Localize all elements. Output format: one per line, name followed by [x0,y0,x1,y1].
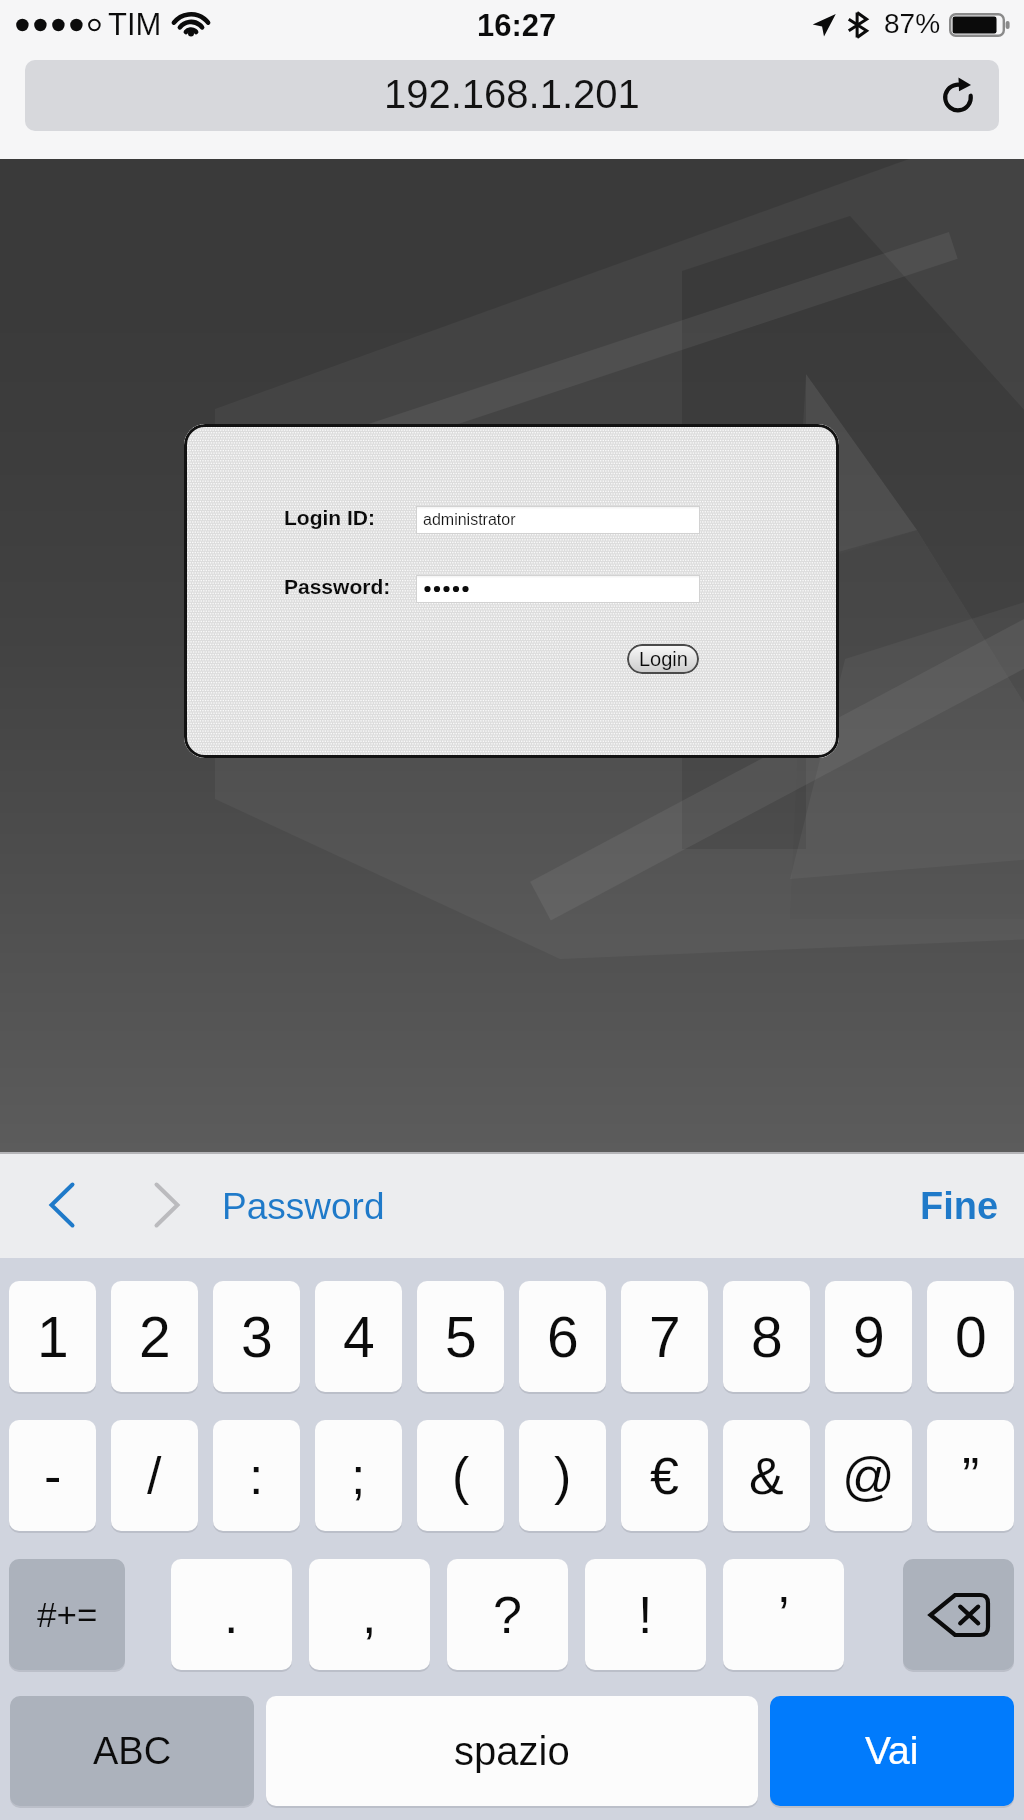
button[interactable]: 9 [825,1281,912,1392]
staticText: 192.168.1.201 [384,72,640,117]
staticText: @ [842,1447,895,1505]
button[interactable]: 7 [621,1281,708,1392]
staticText: ? [493,1586,522,1644]
staticText: . [224,1586,239,1644]
button[interactable]: Previous field [30,1164,94,1246]
staticText: ABC [93,1730,172,1772]
staticText: ” [962,1447,980,1505]
button[interactable]: 6 [519,1281,606,1392]
staticText: / [147,1447,162,1505]
staticText: #+= [37,1595,98,1634]
staticText: TIM [108,7,162,42]
staticText: 16:27 [477,8,557,43]
staticText: 7 [649,1305,681,1369]
button[interactable]: administrator [416,506,700,534]
staticText: € [650,1447,679,1505]
button[interactable]: ABC [10,1696,254,1806]
staticText: , [362,1586,377,1644]
staticText: spazio [454,1729,570,1774]
button[interactable]: 192.168.1.201 [25,60,999,131]
staticText: ’ [778,1586,790,1644]
button[interactable]: , [309,1559,430,1670]
button[interactable]: 8 [723,1281,810,1392]
staticText: ; [351,1447,366,1505]
staticText: 87% [884,8,941,39]
button[interactable]: ’ [723,1559,844,1670]
button[interactable]: Vai [770,1696,1014,1806]
staticText: 2 [139,1305,171,1369]
staticText: 8 [751,1305,783,1369]
button[interactable]: & [723,1420,810,1531]
button[interactable]: . [171,1559,292,1670]
button[interactable]: Fine [906,1172,1013,1238]
other: Backspace [903,1559,1014,1670]
staticText: & [749,1447,784,1505]
staticText: 6 [547,1305,579,1369]
staticText: Password: [284,575,391,598]
staticText: administrator [423,511,516,529]
button[interactable]: 3 [213,1281,300,1392]
button[interactable]: - [9,1420,96,1531]
button[interactable]: : [213,1420,300,1531]
button[interactable]: 4 [315,1281,402,1392]
button[interactable]: 2 [111,1281,198,1392]
staticText: 9 [853,1305,885,1369]
button[interactable]: #+= [9,1559,125,1670]
button[interactable]: ; [315,1420,402,1531]
staticText: Fine [920,1185,999,1227]
staticText: ( [452,1447,470,1505]
staticText: 3 [241,1305,273,1369]
staticText: 4 [343,1305,375,1369]
button[interactable]: 0 [927,1281,1014,1392]
button[interactable]: / [111,1420,198,1531]
button[interactable]: 1 [9,1281,96,1392]
button[interactable]: Login [627,644,699,674]
staticText: 1 [37,1305,69,1369]
button[interactable]: 5 [417,1281,504,1392]
button[interactable]: Password [222,1152,402,1258]
button[interactable]: Next field [135,1164,199,1246]
button[interactable]: @ [825,1420,912,1531]
button[interactable]: Reload page [931,69,985,123]
button[interactable]: ” [927,1420,1014,1531]
button[interactable]: ( [417,1420,504,1531]
staticText: Vai [865,1729,919,1773]
button[interactable]: ) [519,1420,606,1531]
button[interactable] [416,575,700,603]
button[interactable]: ? [447,1559,568,1670]
button[interactable]: spazio [266,1696,758,1806]
staticText: Password [222,1186,385,1227]
staticText: Login ID: [284,506,375,529]
staticText: - [44,1447,62,1505]
button[interactable] [903,1559,1014,1670]
staticText: 5 [445,1305,477,1369]
staticText: : [249,1447,264,1505]
staticText: 0 [955,1305,987,1369]
staticText: Login [639,648,688,670]
button[interactable]: € [621,1420,708,1531]
staticText: ! [638,1586,653,1644]
button[interactable]: ! [585,1559,706,1670]
staticText: ) [554,1447,572,1505]
